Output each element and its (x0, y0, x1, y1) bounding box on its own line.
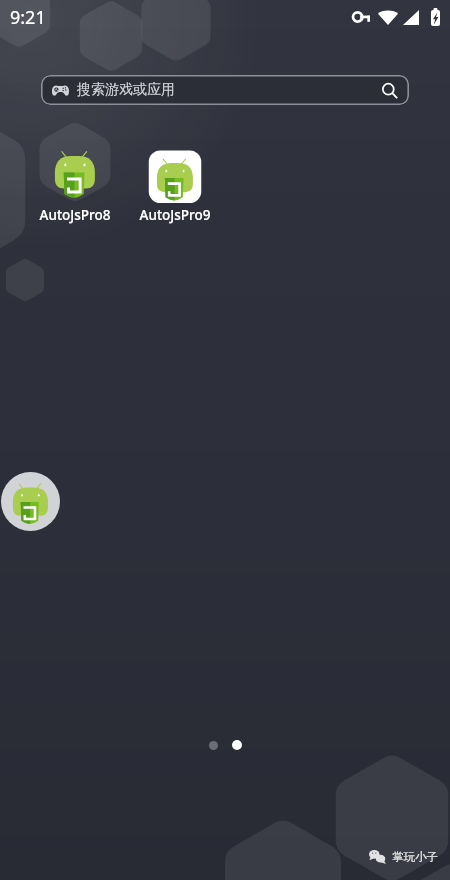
button[interactable]: Page 2 (232, 740, 242, 750)
button[interactable]: AutoJsPro9 (130, 118, 220, 224)
button[interactable]: AutoJs floating shortcut (1, 472, 60, 531)
staticText: 9:21 (10, 5, 46, 30)
staticText: AutoJsPro9 (130, 206, 220, 224)
button[interactable]: Page 1 (209, 741, 218, 750)
button[interactable]: AutoJsPro8 (30, 118, 120, 224)
staticText: AutoJsPro8 (30, 206, 120, 224)
staticText: 掌玩小子 (392, 850, 438, 864)
button[interactable]: 搜索游戏或应用 (41, 75, 409, 105)
staticText: 搜索游戏或应用 (77, 81, 175, 99)
